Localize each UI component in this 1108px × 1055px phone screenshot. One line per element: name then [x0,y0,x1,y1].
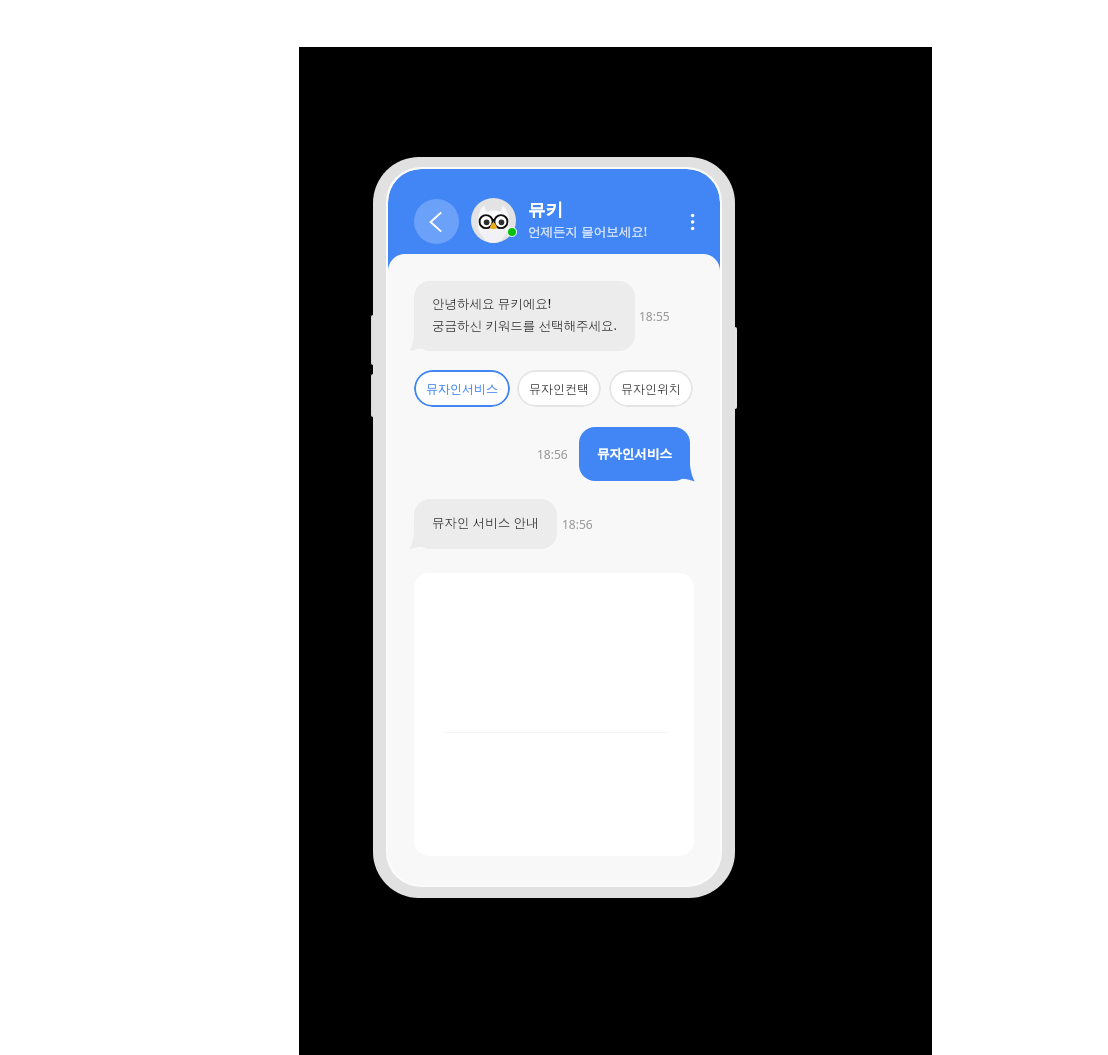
button[interactable]: 뮤자인서비스 [414,370,510,407]
button[interactable]: Back [414,199,459,244]
button[interactable]: 뮤자인 서비스 안내 [414,499,557,549]
staticText: 뮤자인컨택 [529,381,589,396]
staticText: 18:56 [537,446,568,462]
staticText: 궁금하신 키워드를 선택해주세요. [432,317,617,334]
staticText: 안녕하세요 뮤키에요! [432,295,552,312]
staticText: 언제든지 물어보세요! [528,223,648,240]
staticText: 뮤자인 서비스 안내 [432,514,539,531]
button[interactable]: 안녕하세요 뮤키에요! [414,281,635,351]
button[interactable]: More options [677,209,703,235]
staticText: 뮤자인서비스 [426,381,498,396]
staticText: 18:56 [562,516,593,532]
staticText: 18:55 [639,308,670,324]
staticText: 뮤키 [528,199,563,221]
button[interactable]: 뮤자인위치 [609,370,693,407]
button[interactable]: 뮤자인서비스 [579,427,690,481]
staticText: 뮤자인위치 [621,381,681,396]
staticText: 뮤자인서비스 [597,446,672,462]
button[interactable]: 뮤자인컨택 [517,370,601,407]
